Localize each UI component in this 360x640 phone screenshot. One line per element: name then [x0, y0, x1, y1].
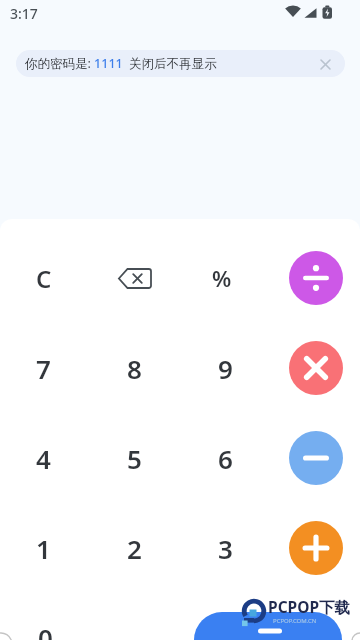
button[interactable]: C — [12, 246, 76, 310]
button[interactable] — [315, 54, 335, 74]
button[interactable] — [289, 341, 343, 395]
staticText: 3 — [218, 531, 233, 566]
button[interactable] — [103, 246, 167, 310]
staticText: 0 — [38, 620, 53, 640]
staticText: % — [212, 263, 232, 293]
button[interactable] — [194, 612, 342, 640]
button[interactable]: 1 — [11, 516, 75, 580]
staticText: 9 — [218, 351, 233, 386]
button[interactable]: 8 — [102, 336, 166, 400]
button[interactable]: 7 — [11, 336, 75, 400]
staticText: C — [36, 262, 52, 295]
staticText: 7 — [36, 351, 51, 386]
staticText: PCPOP下载 — [268, 596, 351, 617]
staticText: 4 — [36, 441, 51, 476]
button[interactable]: 9 — [193, 336, 257, 400]
staticText: 你的密码是: 1111 关闭后不再显示 — [25, 55, 217, 72]
staticText: 8 — [127, 351, 142, 386]
button[interactable]: % — [190, 246, 254, 310]
button[interactable]: 你的密码是: 1111 关闭后不再显示 — [16, 50, 345, 77]
button[interactable]: 6 — [193, 426, 257, 490]
button[interactable] — [289, 251, 343, 305]
button[interactable]: 3 — [193, 516, 257, 580]
button[interactable] — [289, 521, 343, 575]
staticText: 2 — [127, 531, 142, 566]
staticText: 6 — [218, 441, 233, 476]
staticText: 3:17 — [10, 4, 38, 23]
button[interactable]: 5 — [102, 426, 166, 490]
staticText: 5 — [127, 441, 142, 476]
button[interactable]: 4 — [11, 426, 75, 490]
staticText: PCPOP.COM.CN — [273, 617, 317, 625]
staticText: 1 — [36, 531, 51, 566]
button[interactable]: 0 — [13, 605, 77, 640]
button[interactable] — [289, 431, 343, 485]
button[interactable]: 2 — [102, 516, 166, 580]
